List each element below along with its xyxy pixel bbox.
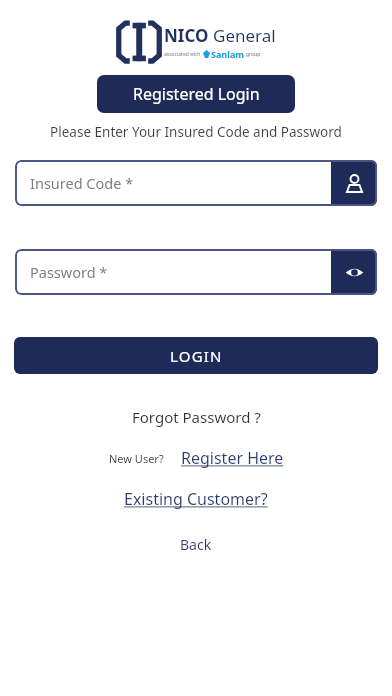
- button[interactable]: Existing Customer?: [124, 488, 268, 510]
- staticText: Register Here: [181, 447, 284, 469]
- button[interactable]: Select insured code: [331, 160, 377, 206]
- staticText: Sanlam: [211, 48, 245, 60]
- button[interactable]: Back: [168, 532, 224, 557]
- staticText: Back: [180, 535, 212, 554]
- staticText: LOGIN: [170, 346, 223, 366]
- button[interactable]: LOGIN: [14, 337, 378, 374]
- staticText: General: [213, 24, 276, 47]
- staticText: associated with: [164, 51, 201, 58]
- staticText: Insured Code *: [30, 173, 134, 193]
- staticText: group: [246, 51, 261, 58]
- button[interactable]: Register Here: [181, 447, 284, 469]
- staticText: NICO: [164, 24, 209, 47]
- staticText: Please Enter Your Insured Code and Passw…: [50, 123, 342, 141]
- staticText: Registered Login: [133, 83, 260, 105]
- button[interactable]: Forgot Password ?: [122, 404, 271, 430]
- staticText: Existing Customer?: [124, 488, 268, 510]
- button[interactable]: Password *: [15, 249, 331, 295]
- staticText: Forgot Password ?: [132, 407, 261, 427]
- button[interactable]: Registered Login: [97, 75, 295, 113]
- button[interactable]: Show password: [331, 249, 377, 295]
- staticText: Password *: [30, 262, 108, 282]
- staticText: New User?: [109, 451, 164, 466]
- button[interactable]: Insured Code *: [15, 160, 331, 206]
